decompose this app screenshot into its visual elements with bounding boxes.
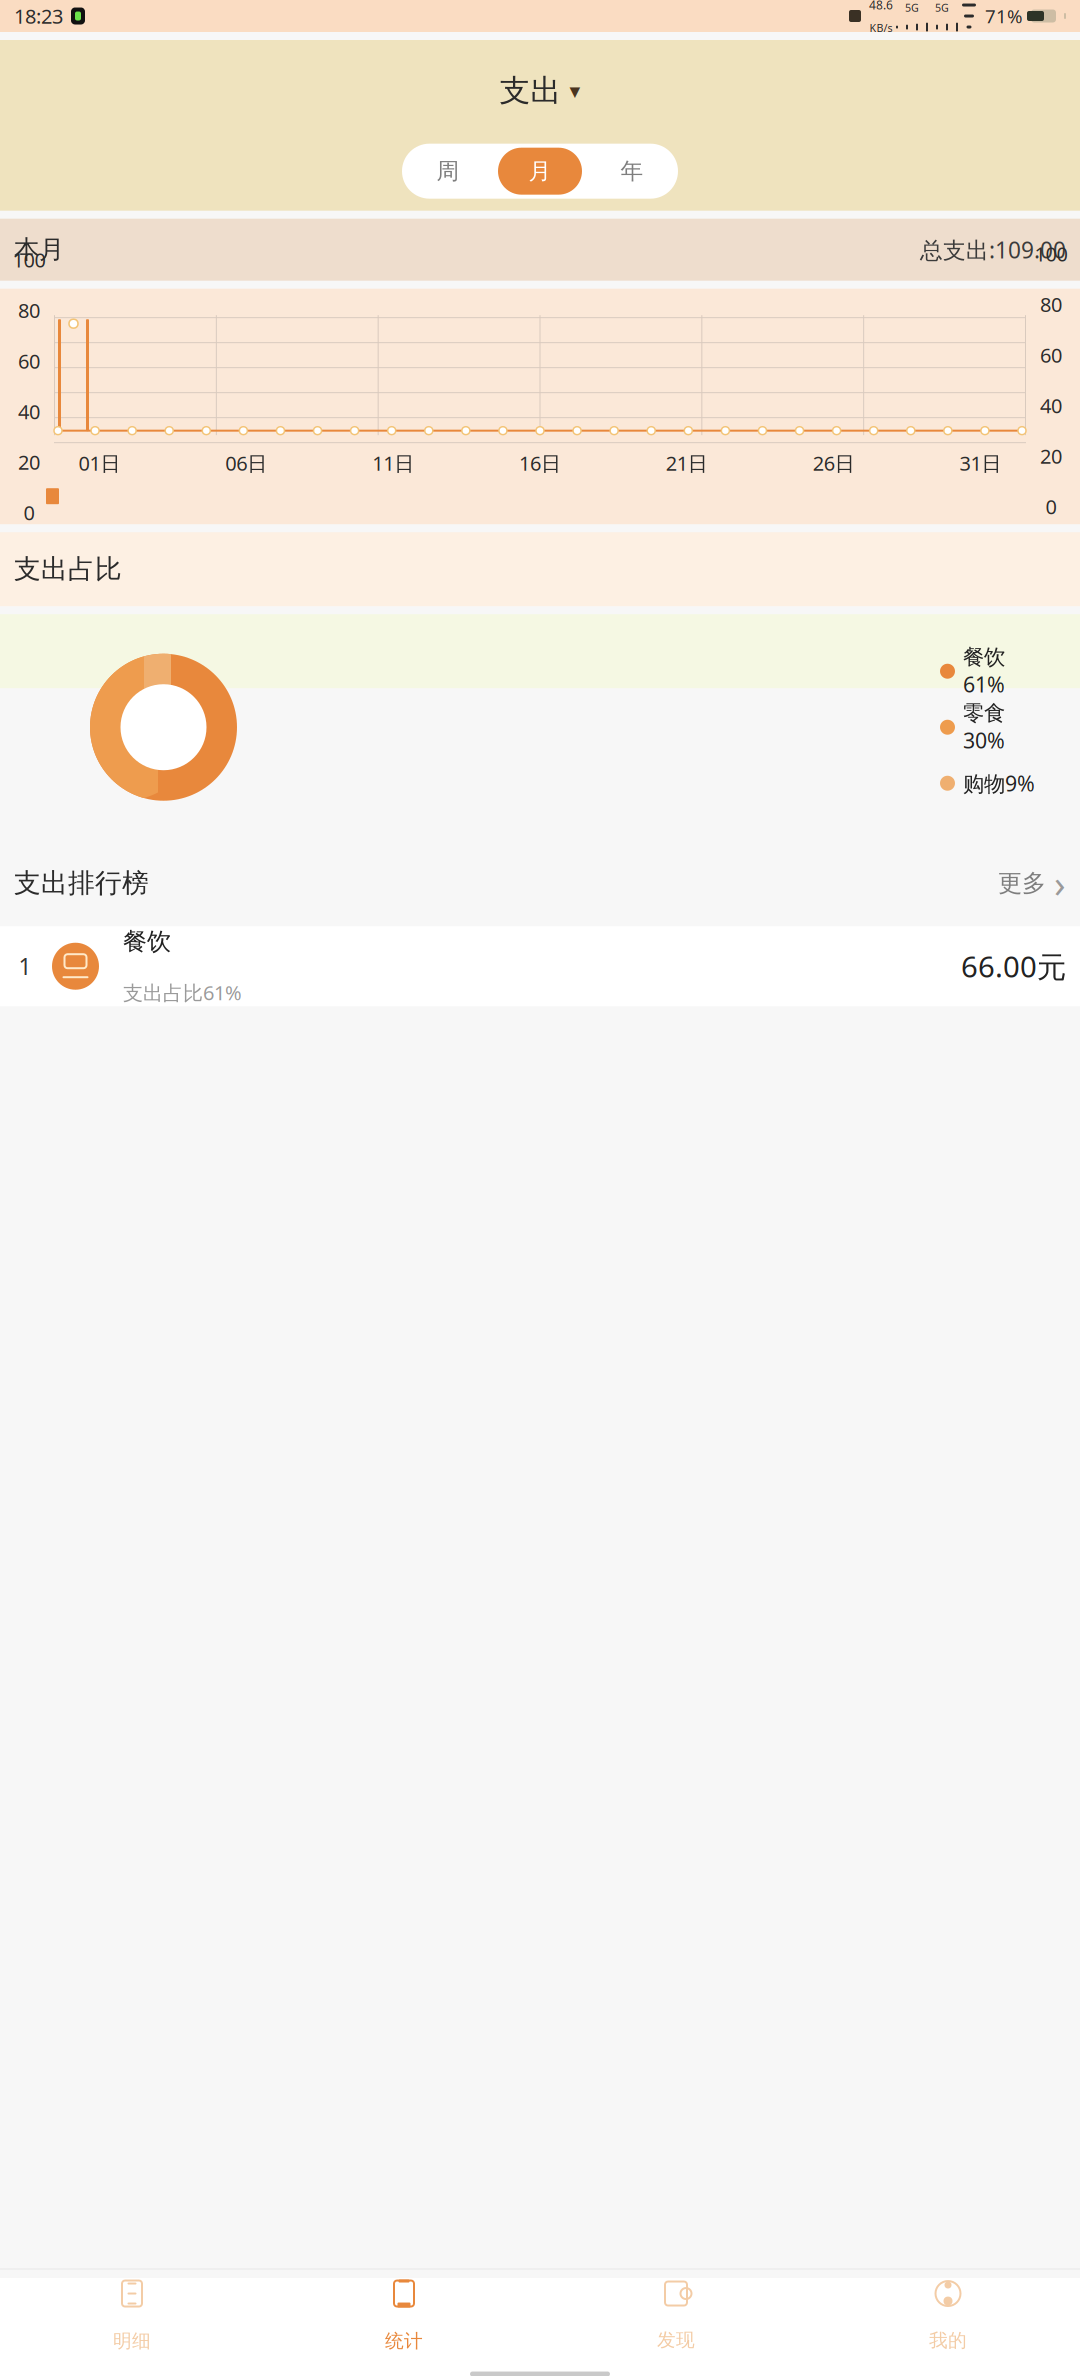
staticText: 统计: [385, 2329, 423, 2352]
staticText: 月: [528, 157, 551, 185]
staticText: 40: [1040, 392, 1062, 419]
staticText: 80: [1040, 291, 1062, 318]
staticText: 71%: [985, 4, 1023, 28]
staticText: KB/s: [869, 21, 892, 35]
staticText: 总支出:109.00: [920, 235, 1066, 265]
staticText: 5G: [935, 0, 949, 15]
staticText: 21日: [666, 450, 708, 476]
staticText: 餐饮: [123, 927, 171, 956]
staticText: 我的: [929, 2329, 967, 2352]
staticText: 60: [18, 348, 40, 374]
staticText: 20: [1040, 443, 1062, 469]
staticText: ▾: [569, 79, 580, 103]
button[interactable]: 明细: [0, 2285, 264, 2347]
staticText: 更多: [998, 868, 1046, 898]
staticText: 18:23: [14, 3, 63, 29]
staticText: 5G: [905, 0, 919, 15]
staticText: 40: [18, 398, 40, 425]
staticText: 31日: [960, 450, 1002, 476]
staticText: 11日: [372, 450, 414, 476]
button[interactable]: 统计: [272, 2285, 536, 2347]
button[interactable]: 周: [406, 148, 490, 195]
staticText: 零食30%: [963, 700, 1005, 754]
button[interactable]: 年: [590, 148, 674, 195]
staticText: 支出占比: [14, 553, 122, 586]
button[interactable]: 月: [498, 148, 582, 195]
staticText: 本月: [14, 234, 64, 265]
staticText: 周: [436, 157, 459, 185]
staticText: 餐饮61%: [963, 644, 1005, 698]
staticText: 66.00元: [961, 947, 1066, 986]
staticText: 60: [1040, 342, 1062, 368]
staticText: 26日: [813, 450, 855, 476]
staticText: 20: [18, 449, 40, 475]
staticText: 支出排行榜: [14, 867, 149, 900]
staticText: 100: [1034, 240, 1067, 267]
staticText: 80: [18, 297, 40, 324]
staticText: 发现: [657, 2328, 695, 2351]
staticText: 0: [1045, 493, 1056, 520]
staticText: 1: [18, 951, 31, 981]
button[interactable]: 我的: [816, 2285, 1080, 2347]
staticText: 01日: [78, 450, 120, 476]
staticText: 支出: [499, 72, 561, 110]
button[interactable]: 支出排行榜: [0, 848, 1080, 918]
staticText: 支出占比61%: [123, 979, 242, 1006]
staticText: 购物9%: [963, 769, 1035, 797]
staticText: 0: [23, 499, 34, 526]
staticText: 48.6: [869, 0, 893, 13]
staticText: 100: [12, 246, 45, 273]
staticText: 年: [620, 157, 643, 185]
button[interactable]: 支出: [489, 66, 590, 116]
staticText: 明细: [113, 2329, 151, 2352]
staticText: 16日: [519, 450, 561, 476]
staticText: ›: [1054, 858, 1066, 908]
staticText: 06日: [225, 450, 267, 476]
button[interactable]: 发现: [544, 2285, 808, 2347]
button[interactable]: 1: [0, 926, 1080, 1006]
